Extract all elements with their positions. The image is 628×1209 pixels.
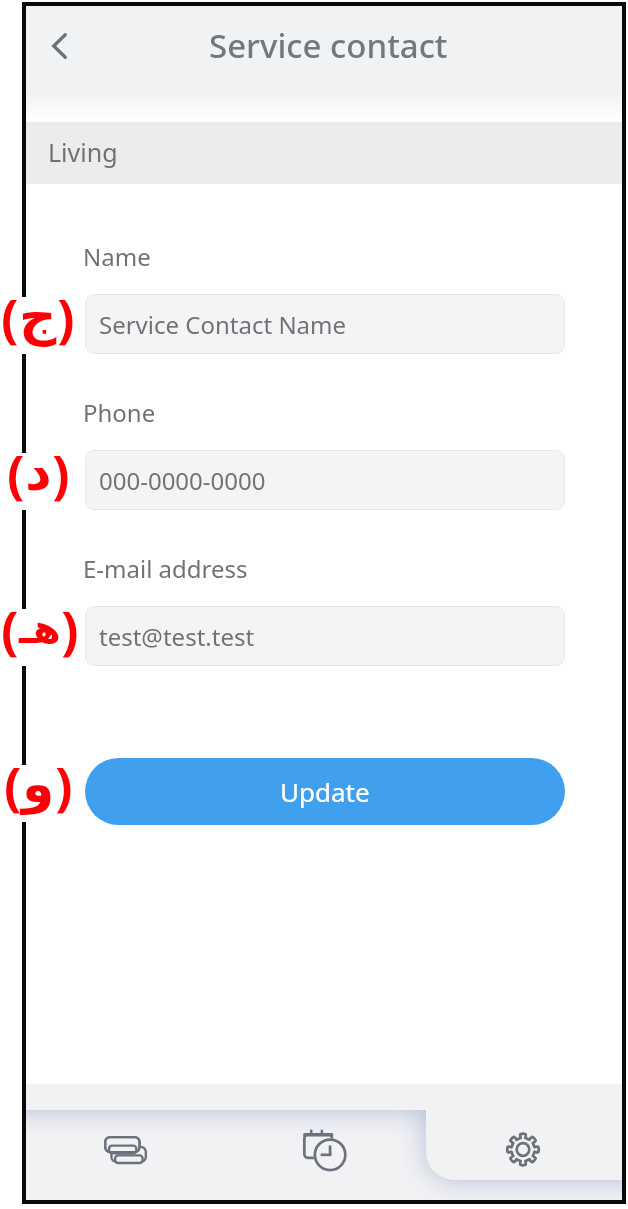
button[interactable]: 000-0000-0000 xyxy=(85,450,565,510)
staticText: ) xyxy=(52,437,70,508)
staticText: Living xyxy=(48,135,118,169)
staticText: Name xyxy=(83,240,151,273)
staticText: Service contact xyxy=(209,23,448,68)
staticText: ) xyxy=(57,281,75,352)
staticText: 000-0000-0000 xyxy=(99,464,266,497)
button[interactable]: Settings xyxy=(423,1091,622,1200)
staticText: ج xyxy=(19,286,57,347)
button[interactable]: Print xyxy=(26,1091,224,1200)
button[interactable]: Schedule xyxy=(224,1091,423,1200)
staticText: ( xyxy=(1,281,19,352)
staticText: د xyxy=(25,442,52,503)
button[interactable]: Update xyxy=(85,758,565,825)
button[interactable]: Back xyxy=(26,6,98,92)
staticText: E-mail address xyxy=(83,552,248,585)
staticText: هـ xyxy=(19,605,61,652)
staticText: ( xyxy=(7,437,25,508)
staticText: ( xyxy=(1,593,19,664)
staticText: ( xyxy=(4,749,22,820)
staticText: Phone xyxy=(83,396,156,429)
button[interactable]: Service Contact Name xyxy=(85,294,565,354)
staticText: test@test.test xyxy=(99,620,255,653)
staticText: و xyxy=(22,754,55,815)
staticText: ) xyxy=(55,749,73,820)
button[interactable]: test@test.test xyxy=(85,606,565,666)
staticText: Update xyxy=(280,774,370,809)
staticText: Service Contact Name xyxy=(99,308,347,341)
staticText: ) xyxy=(61,593,75,664)
